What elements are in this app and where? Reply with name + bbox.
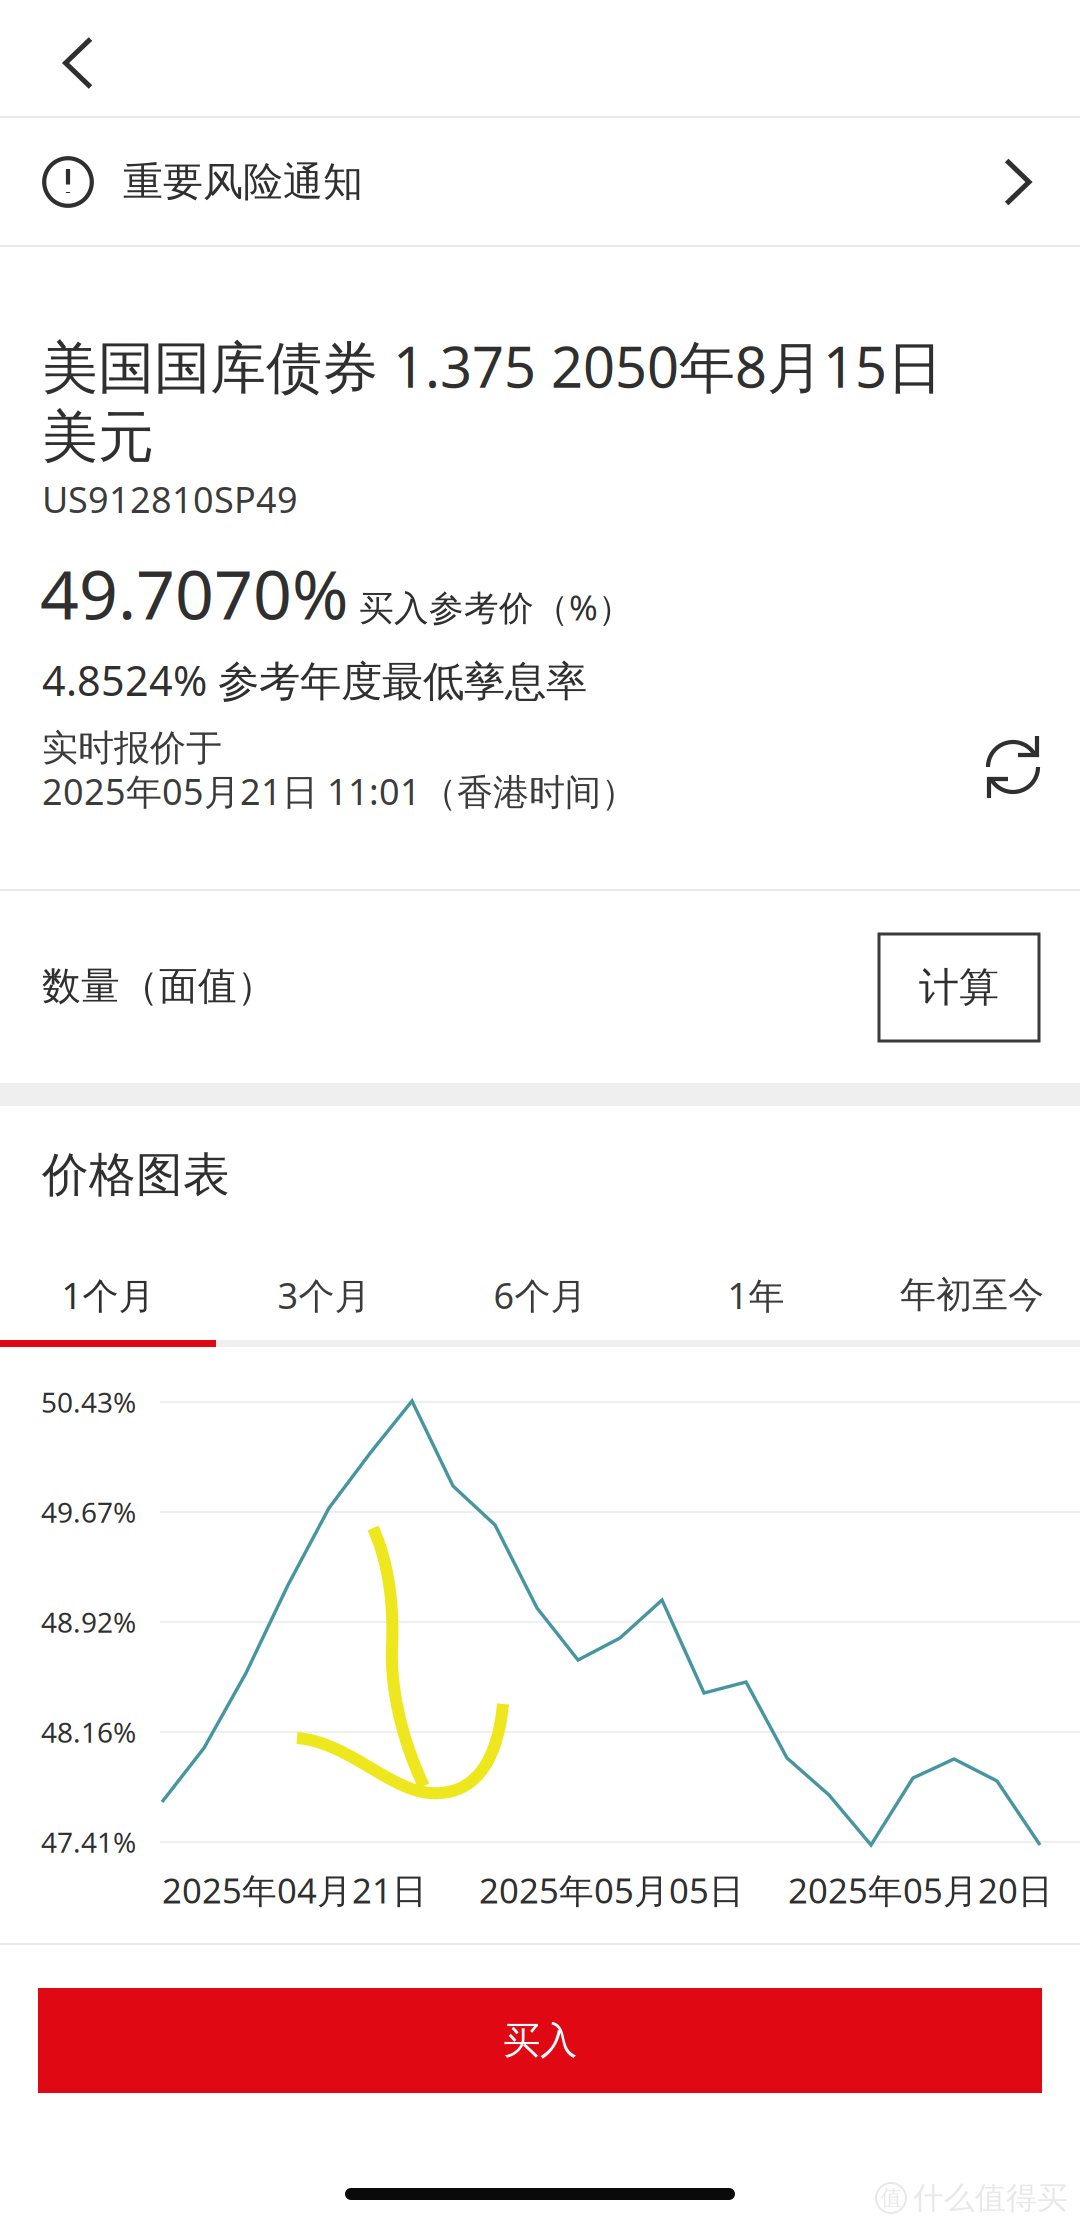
staticText: 重要风险通知 (123, 157, 363, 206)
staticText: 2025年05月20日 (788, 1867, 1053, 1913)
staticText: 49.67% (41, 1493, 136, 1531)
staticText: 买入参考价（%） (359, 584, 633, 630)
staticText: 48.16% (41, 1713, 136, 1751)
staticText: 美国国库债券 1.375 2050年8月15日 (42, 329, 943, 403)
staticText: 49.7070% (40, 548, 349, 638)
button[interactable]: 1个月 (0, 1239, 216, 1351)
button[interactable]: Back (16, 4, 140, 121)
button[interactable]: 重要风险通知 (0, 118, 1080, 246)
staticText: 年初至今 (900, 1273, 1044, 1317)
staticText: 50.43% (41, 1383, 136, 1421)
staticText: 1个月 (61, 1271, 154, 1319)
button[interactable]: 计算 (879, 934, 1039, 1041)
button[interactable]: 6个月 (432, 1239, 648, 1351)
staticText: 1年 (727, 1271, 784, 1319)
staticText: 4.8524% 参考年度最低孳息率 (42, 653, 587, 707)
staticText: 价格图表 (42, 1146, 230, 1204)
staticText: 3个月 (277, 1271, 370, 1319)
staticText: 2025年05月21日 11:01（香港时间） (42, 767, 637, 815)
staticText: 美元 (42, 403, 154, 471)
staticText: 什么值得买 (913, 2179, 1068, 2217)
staticText: 数量（面值） (42, 962, 276, 1010)
staticText: 2025年05月05日 (479, 1867, 744, 1913)
staticText: 计算 (919, 963, 999, 1012)
button[interactable]: 买入 (38, 1988, 1042, 2093)
staticText: 值 (880, 2185, 901, 2211)
staticText: 48.92% (41, 1603, 136, 1641)
button[interactable]: Refresh quote (968, 722, 1058, 812)
button[interactable]: 3个月 (216, 1239, 432, 1351)
staticText: US912810SP49 (42, 475, 298, 523)
staticText: 2025年04月21日 (162, 1867, 427, 1913)
staticText: 买入 (503, 2018, 577, 2063)
staticText: 47.41% (41, 1823, 136, 1861)
staticText: 6个月 (493, 1271, 586, 1319)
button[interactable]: 1年 (648, 1239, 864, 1351)
button[interactable]: 年初至今 (864, 1239, 1080, 1351)
staticText: 实时报价于 (42, 726, 222, 770)
